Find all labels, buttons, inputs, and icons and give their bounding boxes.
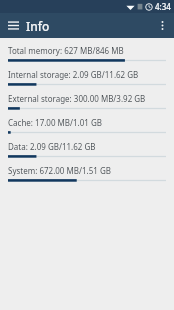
button[interactable]: Total memory: 627 MB/846 MB — [0, 41, 174, 65]
button[interactable]: System: 672.00 MB/1.51 GB — [0, 161, 174, 185]
button[interactable]: Internal storage: 2.09 GB/11.62 GB — [0, 65, 174, 89]
staticText: Total memory: 627 MB/846 MB — [8, 45, 124, 56]
button[interactable]: Open navigation drawer — [0, 13, 26, 38]
staticText: Internal storage: 2.09 GB/11.62 GB — [8, 69, 139, 80]
staticText: Cache: 17.00 MB/1.01 GB — [8, 117, 102, 128]
button[interactable]: External storage: 300.00 MB/3.92 GB — [0, 89, 174, 113]
staticText: External storage: 300.00 MB/3.92 GB — [8, 93, 146, 104]
staticText: Data: 2.09 GB/11.62 GB — [8, 141, 96, 152]
button[interactable]: Cache: 17.00 MB/1.01 GB — [0, 113, 174, 137]
staticText: Info — [26, 18, 50, 34]
staticText: System: 672.00 MB/1.51 GB — [8, 165, 111, 176]
staticText: 4:34 — [155, 1, 171, 12]
button[interactable]: Data: 2.09 GB/11.62 GB — [0, 137, 174, 161]
button[interactable]: More options — [150, 13, 174, 38]
